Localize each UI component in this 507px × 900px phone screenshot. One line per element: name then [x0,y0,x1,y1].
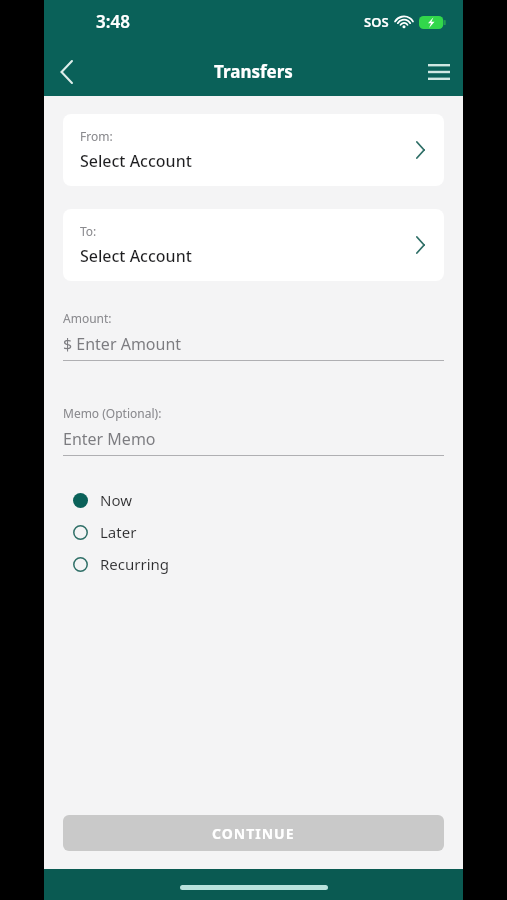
button[interactable]: CONTINUE [63,815,444,851]
staticText: Amount: [63,310,112,326]
staticText: Enter Memo [63,428,156,450]
button[interactable]: Amount: [63,310,444,361]
button[interactable]: To: [63,209,444,281]
staticText: From: [80,128,113,144]
staticText: Select Account [80,150,192,172]
staticText: Select Account [80,245,192,267]
staticText: Recurring [100,554,170,574]
button[interactable]: From: [63,114,444,186]
button[interactable]: Back [44,50,88,94]
staticText: CONTINUE [212,824,295,843]
staticText: To: [80,223,97,239]
staticText: $ Enter Amount [63,333,182,355]
button[interactable]: Menu [415,48,463,96]
staticText: Later [100,522,137,542]
staticText: Memo (Optional): [63,405,162,421]
button[interactable]: Later [44,516,463,548]
staticText: SOS [364,13,389,31]
button[interactable]: Memo (Optional): [63,405,444,456]
button[interactable]: Recurring [44,548,463,580]
staticText: Now [100,490,132,510]
button[interactable]: Now [44,484,463,516]
staticText: 3:48 [96,10,130,33]
staticText: Transfers [214,60,293,83]
